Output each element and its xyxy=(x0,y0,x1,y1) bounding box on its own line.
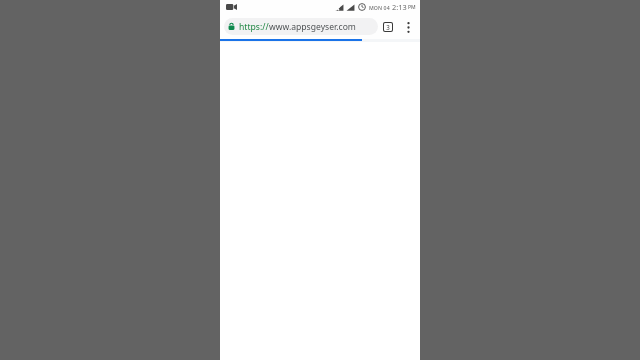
staticText: MON 04 xyxy=(369,4,390,11)
staticText: www.appsgeyser.com xyxy=(269,21,356,33)
staticText: 3 xyxy=(386,23,390,31)
button[interactable]: Switch tabs, 3 open tabs xyxy=(378,17,398,37)
staticText: https:// xyxy=(239,21,269,33)
button[interactable]: https:// xyxy=(224,18,378,35)
button[interactable]: More options xyxy=(398,17,418,37)
staticText: PM xyxy=(408,4,416,11)
staticText: 2:13 xyxy=(392,2,407,12)
